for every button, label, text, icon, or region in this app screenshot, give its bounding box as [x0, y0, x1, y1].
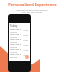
staticText: Item title 0 — [10, 28, 22, 31]
staticText: Item title 3 — [10, 43, 22, 46]
staticText: Personalized Experience — [8, 2, 57, 7]
staticText: Today — [10, 24, 18, 27]
staticText: subtitle — [10, 56, 18, 58]
staticText: 12:00 — [23, 44, 29, 47]
button[interactable]: Item title 1 — [10, 33, 29, 38]
staticText: 12:00 — [23, 34, 29, 37]
staticText: Item title 5 — [10, 53, 22, 56]
staticText: subtitle — [10, 51, 18, 53]
button[interactable]: Item title 3 — [10, 43, 29, 48]
staticText: Tailored recommendations just for you to… — [16, 8, 48, 14]
button[interactable]: Item title 2 — [10, 38, 29, 43]
staticText: 12:00 — [23, 39, 29, 42]
button[interactable]: Item title 4 — [10, 48, 29, 53]
staticText: Item title 1 — [10, 33, 22, 36]
staticText: subtitle — [10, 31, 18, 33]
staticText: Item title 2 — [10, 38, 22, 41]
staticText: 12:00 — [23, 29, 29, 32]
staticText: subtitle — [10, 36, 18, 38]
button[interactable]: Item title 0 — [10, 28, 29, 33]
staticText: 12:00 — [23, 54, 29, 57]
button[interactable]: Add — [25, 55, 29, 59]
button[interactable]: Item title 5 — [10, 53, 29, 58]
staticText: subtitle — [10, 46, 18, 48]
staticText: 12:00 — [23, 49, 29, 52]
staticText: subtitle — [10, 41, 18, 43]
staticText: Item title 4 — [10, 48, 22, 51]
